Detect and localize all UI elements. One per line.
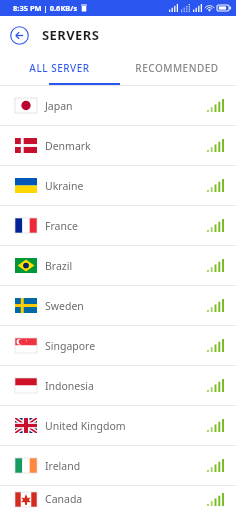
staticText: Indonesia: [45, 379, 94, 393]
button[interactable]: Sweden: [0, 286, 236, 325]
button[interactable]: Back: [8, 24, 30, 46]
button[interactable]: Ukraine: [0, 166, 236, 205]
button[interactable]: United Kingdom: [0, 406, 236, 445]
staticText: Canada: [45, 492, 83, 506]
button[interactable]: Indonesia: [0, 366, 236, 405]
staticText: Ukraine: [45, 179, 84, 193]
button[interactable]: Canada: [0, 486, 236, 512]
staticText: RECOMMENDED: [135, 61, 219, 75]
button[interactable]: Ireland: [0, 446, 236, 485]
button[interactable]: France: [0, 206, 236, 245]
button[interactable]: Denmark: [0, 126, 236, 165]
button[interactable]: Singapore: [0, 326, 236, 365]
button[interactable]: Brazil: [0, 246, 236, 285]
staticText: Brazil: [45, 259, 73, 273]
button[interactable]: RECOMMENDED: [118, 53, 236, 83]
staticText: Singapore: [45, 339, 96, 353]
staticText: Japan: [45, 99, 73, 113]
staticText: 8:35 PM | 0.6KB/s: [13, 3, 78, 13]
staticText: United Kingdom: [45, 419, 126, 433]
staticText: France: [45, 219, 78, 233]
staticText: Sweden: [45, 299, 84, 313]
staticText: SERVERS: [42, 26, 100, 44]
staticText: ALL SERVER: [29, 61, 90, 75]
staticText: Ireland: [45, 459, 81, 473]
button[interactable]: Japan: [0, 86, 236, 125]
staticText: Denmark: [45, 139, 91, 153]
button[interactable]: ALL SERVER: [0, 53, 118, 83]
